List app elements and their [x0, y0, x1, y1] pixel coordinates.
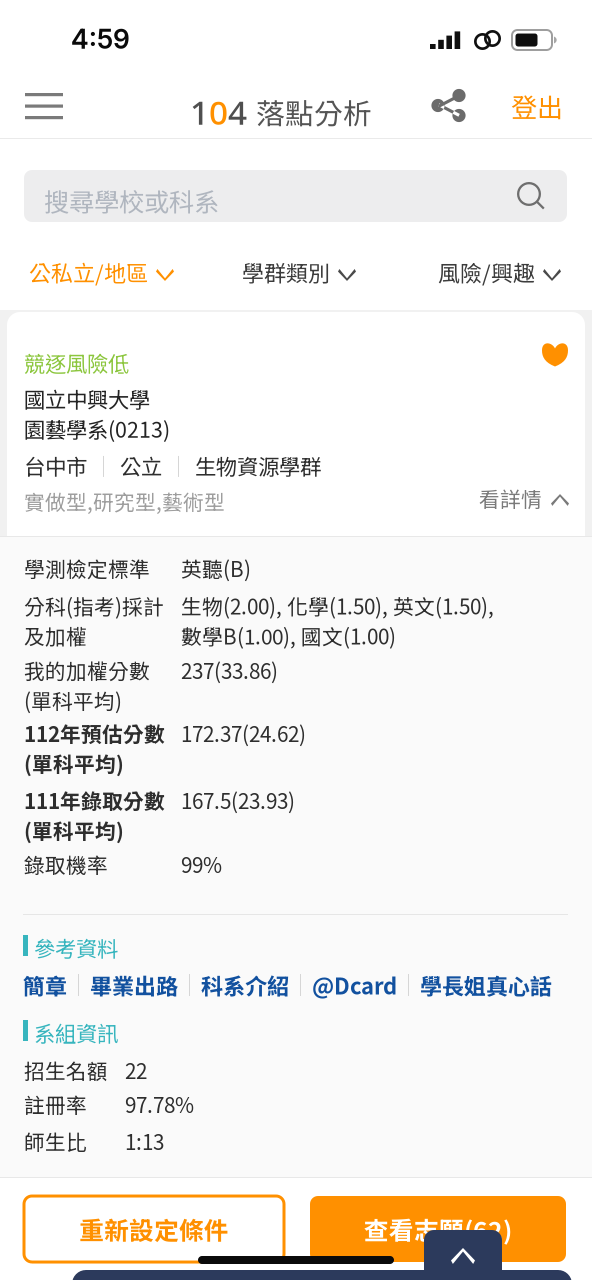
staticText: 師生比 — [24, 1126, 87, 1156]
staticText: 台中市 — [24, 450, 87, 481]
staticText: 競逐風險低 — [24, 347, 129, 378]
button[interactable]: @Dcard — [312, 970, 397, 1000]
staticText: 1:13 — [125, 1126, 164, 1156]
button[interactable]: 科系介紹 — [201, 970, 289, 1000]
staticText: 112年預估分數 — [24, 718, 165, 748]
staticText: 生物資源學群 — [195, 450, 321, 481]
staticText: 登出 — [511, 87, 563, 125]
staticText: 招生名額 — [24, 1055, 108, 1085]
staticText: 生物(2.00), 化學(1.50), 英文(1.50), — [181, 590, 494, 620]
staticText: 參考資料 — [34, 932, 118, 963]
staticText: 111年錄取分數 — [24, 785, 165, 815]
button[interactable]: Scroll to top — [424, 1230, 502, 1280]
staticText: 22 — [125, 1055, 147, 1085]
staticText: 註冊率 — [24, 1089, 87, 1119]
staticText: 公私立/地區 — [29, 256, 148, 288]
button[interactable]: 看詳情 — [479, 482, 569, 514]
staticText: 4 — [228, 89, 247, 134]
button[interactable]: 學長姐真心話 — [420, 970, 552, 1000]
staticText: 簡章 — [23, 969, 67, 1001]
button[interactable]: 重新設定條件 — [24, 1196, 284, 1262]
staticText: 學測檢定標準 — [24, 553, 150, 583]
button[interactable]: 查看志願(62) — [310, 1196, 566, 1262]
staticText: (單科平均) — [24, 748, 124, 778]
staticText: 查看志願(62) — [364, 1211, 512, 1247]
staticText: 看詳情 — [479, 483, 542, 513]
staticText: 重新設定條件 — [79, 1211, 229, 1247]
staticText: 0 — [209, 89, 228, 134]
staticText: 97.78% — [125, 1089, 194, 1119]
staticText: 園藝學系(0213) — [24, 413, 170, 444]
staticText: 1 — [190, 89, 209, 134]
staticText: 我的加權分數 — [24, 655, 150, 685]
staticText: 數學B(1.00), 國文(1.00) — [181, 620, 396, 650]
button[interactable]: 風險/興趣 — [438, 252, 561, 292]
button[interactable]: 畢業出路 — [90, 970, 178, 1000]
staticText: 畢業出路 — [90, 969, 178, 1001]
staticText: 系組資訊 — [34, 1017, 118, 1048]
button[interactable]: 學群類別 — [242, 252, 356, 292]
staticText: (單科平均) — [24, 685, 122, 715]
button[interactable]: 公私立/地區 — [29, 252, 174, 292]
staticText: 學長姐真心話 — [420, 969, 552, 1001]
button[interactable]: Menu — [8, 76, 80, 136]
staticText: @Dcard — [312, 969, 397, 1001]
staticText: 167.5(23.93) — [181, 785, 295, 815]
staticText: 科系介紹 — [201, 969, 289, 1001]
button[interactable]: 登出 — [492, 76, 582, 136]
staticText: 237(33.86) — [181, 655, 278, 685]
staticText: 錄取機率 — [24, 849, 108, 879]
staticText: 實做型,研究型,藝術型 — [24, 486, 225, 516]
button[interactable]: Favourite — [531, 333, 579, 377]
staticText: 分科(指考)採計 — [24, 590, 164, 620]
staticText: 4:59 — [71, 23, 130, 55]
staticText: 國立中興大學 — [24, 383, 150, 414]
staticText: 風險/興趣 — [438, 256, 535, 288]
staticText: 學群類別 — [242, 256, 330, 288]
staticText: 英聽(B) — [181, 553, 251, 583]
button[interactable]: Share — [418, 76, 480, 136]
staticText: 搜尋學校或科系 — [44, 182, 219, 219]
button[interactable]: 簡章 — [23, 970, 67, 1000]
staticText: 及加權 — [24, 620, 87, 650]
staticText: 落點分析 — [256, 91, 372, 132]
staticText: 172.37(24.62) — [181, 718, 306, 748]
staticText: 公立 — [120, 450, 162, 481]
staticText: (單科平均) — [24, 815, 124, 845]
button[interactable]: 搜尋學校或科系 — [24, 170, 567, 222]
staticText: 99% — [181, 849, 222, 879]
